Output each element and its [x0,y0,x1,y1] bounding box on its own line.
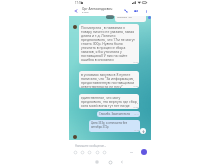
button[interactable]: Back [73,8,79,14]
staticText: 17:06 [133,106,138,109]
button[interactable]: единственное, что могу предложить, это в… [79,94,139,109]
button[interactable]: More options [143,8,149,14]
staticText: Цена 333р, а отплачено без оптобра 372р [91,121,129,129]
button[interactable]: Recents [93,158,101,166]
button[interactable]: Back [118,158,126,166]
staticText: Спасибо. Замечательно [99,112,131,116]
button[interactable]: Посмотрела , в названии к товару ничего … [79,24,139,64]
staticText: единственное, что могу предложить, это в… [81,95,138,108]
button[interactable]: Photo [80,150,85,155]
staticText: Посмотрела , в названии к товару ничего … [81,25,138,62]
button[interactable]: Video call [133,8,139,14]
staticText: 17:04 [133,61,138,64]
button[interactable]: Спасибо. Замечательно [97,111,140,117]
button[interactable]: Home [106,158,114,166]
button[interactable]: Mention [102,150,107,155]
staticText: 17:11 [134,113,139,116]
staticText: в условиях закупки в 8 пункте написано, … [81,72,138,88]
button[interactable]: Call [123,8,129,14]
staticText: Напишите сообщение... [75,144,107,148]
button[interactable]: Camera [87,150,92,155]
button[interactable]: в условиях закупки в 8 пункте написано, … [79,71,139,88]
button[interactable]: Gift [95,150,100,155]
button[interactable]: Voice message [141,149,147,155]
staticText: смотрела что [117,16,132,19]
button[interactable]: Цена 333р, а отплачено без оптобра 372р [89,120,140,132]
staticText: 17:18 [75,1,82,5]
button[interactable]: Sticker [73,150,78,155]
staticText: 17:12 [134,129,139,132]
button[interactable]: Scroll to bottom [140,128,146,134]
staticText: в сети [82,11,89,14]
staticText: 17:05 [133,85,138,88]
staticText: Орг Александрович [82,7,113,11]
